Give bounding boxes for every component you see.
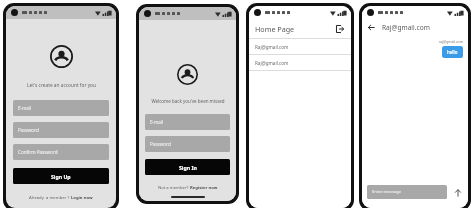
button[interactable]: Not a member? (158, 185, 218, 191)
staticText: raj@gmail.com (439, 39, 463, 44)
button[interactable]: Log out (334, 23, 345, 34)
staticText: Raj@gmail.com (255, 60, 289, 66)
staticText: hello (447, 49, 458, 55)
staticText: Welcome back you've been missed (151, 98, 225, 104)
staticText: Login now (71, 195, 93, 201)
button[interactable]: E-mail (13, 100, 109, 116)
staticText: E-mail (18, 105, 32, 111)
button[interactable]: Sign Up (13, 168, 109, 184)
staticText: Let's create an account for you (27, 82, 96, 89)
staticText: Sign Up (51, 173, 71, 180)
button[interactable]: Raj@gmail.com (249, 39, 351, 54)
staticText: Not a member? (158, 185, 190, 191)
staticText: Raj@gmail.com (255, 44, 289, 50)
other: Account (50, 45, 73, 68)
staticText: Sign In (179, 164, 197, 171)
staticText: Password (18, 127, 39, 133)
staticText: Password (150, 141, 171, 147)
staticText: Home Page (255, 24, 334, 34)
button[interactable]: hello (442, 46, 463, 58)
other: Account (177, 64, 198, 85)
staticText: E-mail (150, 119, 164, 125)
button[interactable]: Send (451, 186, 464, 199)
button[interactable]: E-mail (145, 114, 230, 130)
button[interactable]: Confirm Password (13, 144, 109, 160)
button[interactable]: Raj@gmail.com (249, 55, 351, 70)
button[interactable]: Already a member ? (29, 195, 93, 201)
staticText: Enter message (372, 189, 402, 195)
button[interactable]: Password (13, 122, 109, 138)
staticText: Already a member ? (29, 195, 71, 201)
button[interactable]: Back (366, 22, 377, 33)
button[interactable]: Password (145, 136, 230, 152)
button[interactable]: Enter message (367, 185, 447, 199)
staticText: Confirm Password (18, 149, 58, 155)
staticText: Raj@gmail.com (382, 23, 430, 32)
staticText: Register now (190, 185, 218, 191)
button[interactable]: Sign In (145, 159, 230, 175)
